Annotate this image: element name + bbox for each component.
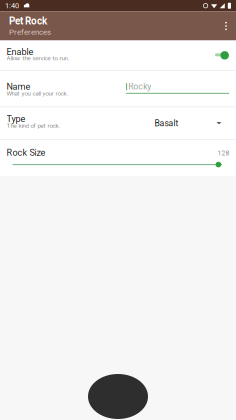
staticText: Enable — [7, 46, 34, 57]
staticText: The kind of pet rock. — [7, 122, 61, 129]
staticText: Allow the service to run. — [7, 55, 70, 62]
staticText: Pet Rock — [9, 15, 47, 27]
staticText: What you call your rock. — [7, 90, 69, 97]
staticText: Preferences — [9, 27, 51, 37]
button[interactable]: Type — [0, 107, 236, 139]
button[interactable]: More options — [216, 11, 236, 40]
button[interactable]: Rock Size — [0, 140, 236, 176]
staticText: Rock Size — [7, 147, 46, 158]
staticText: Type — [7, 114, 26, 124]
staticText: Basalt — [154, 118, 178, 128]
staticText: 1:40 — [5, 1, 19, 10]
button[interactable]: Enable — [0, 40, 236, 70]
staticText: Name — [7, 81, 31, 92]
button[interactable]: Name — [0, 71, 236, 106]
staticText: 128 — [217, 149, 229, 157]
staticText: Rocky — [128, 82, 151, 92]
